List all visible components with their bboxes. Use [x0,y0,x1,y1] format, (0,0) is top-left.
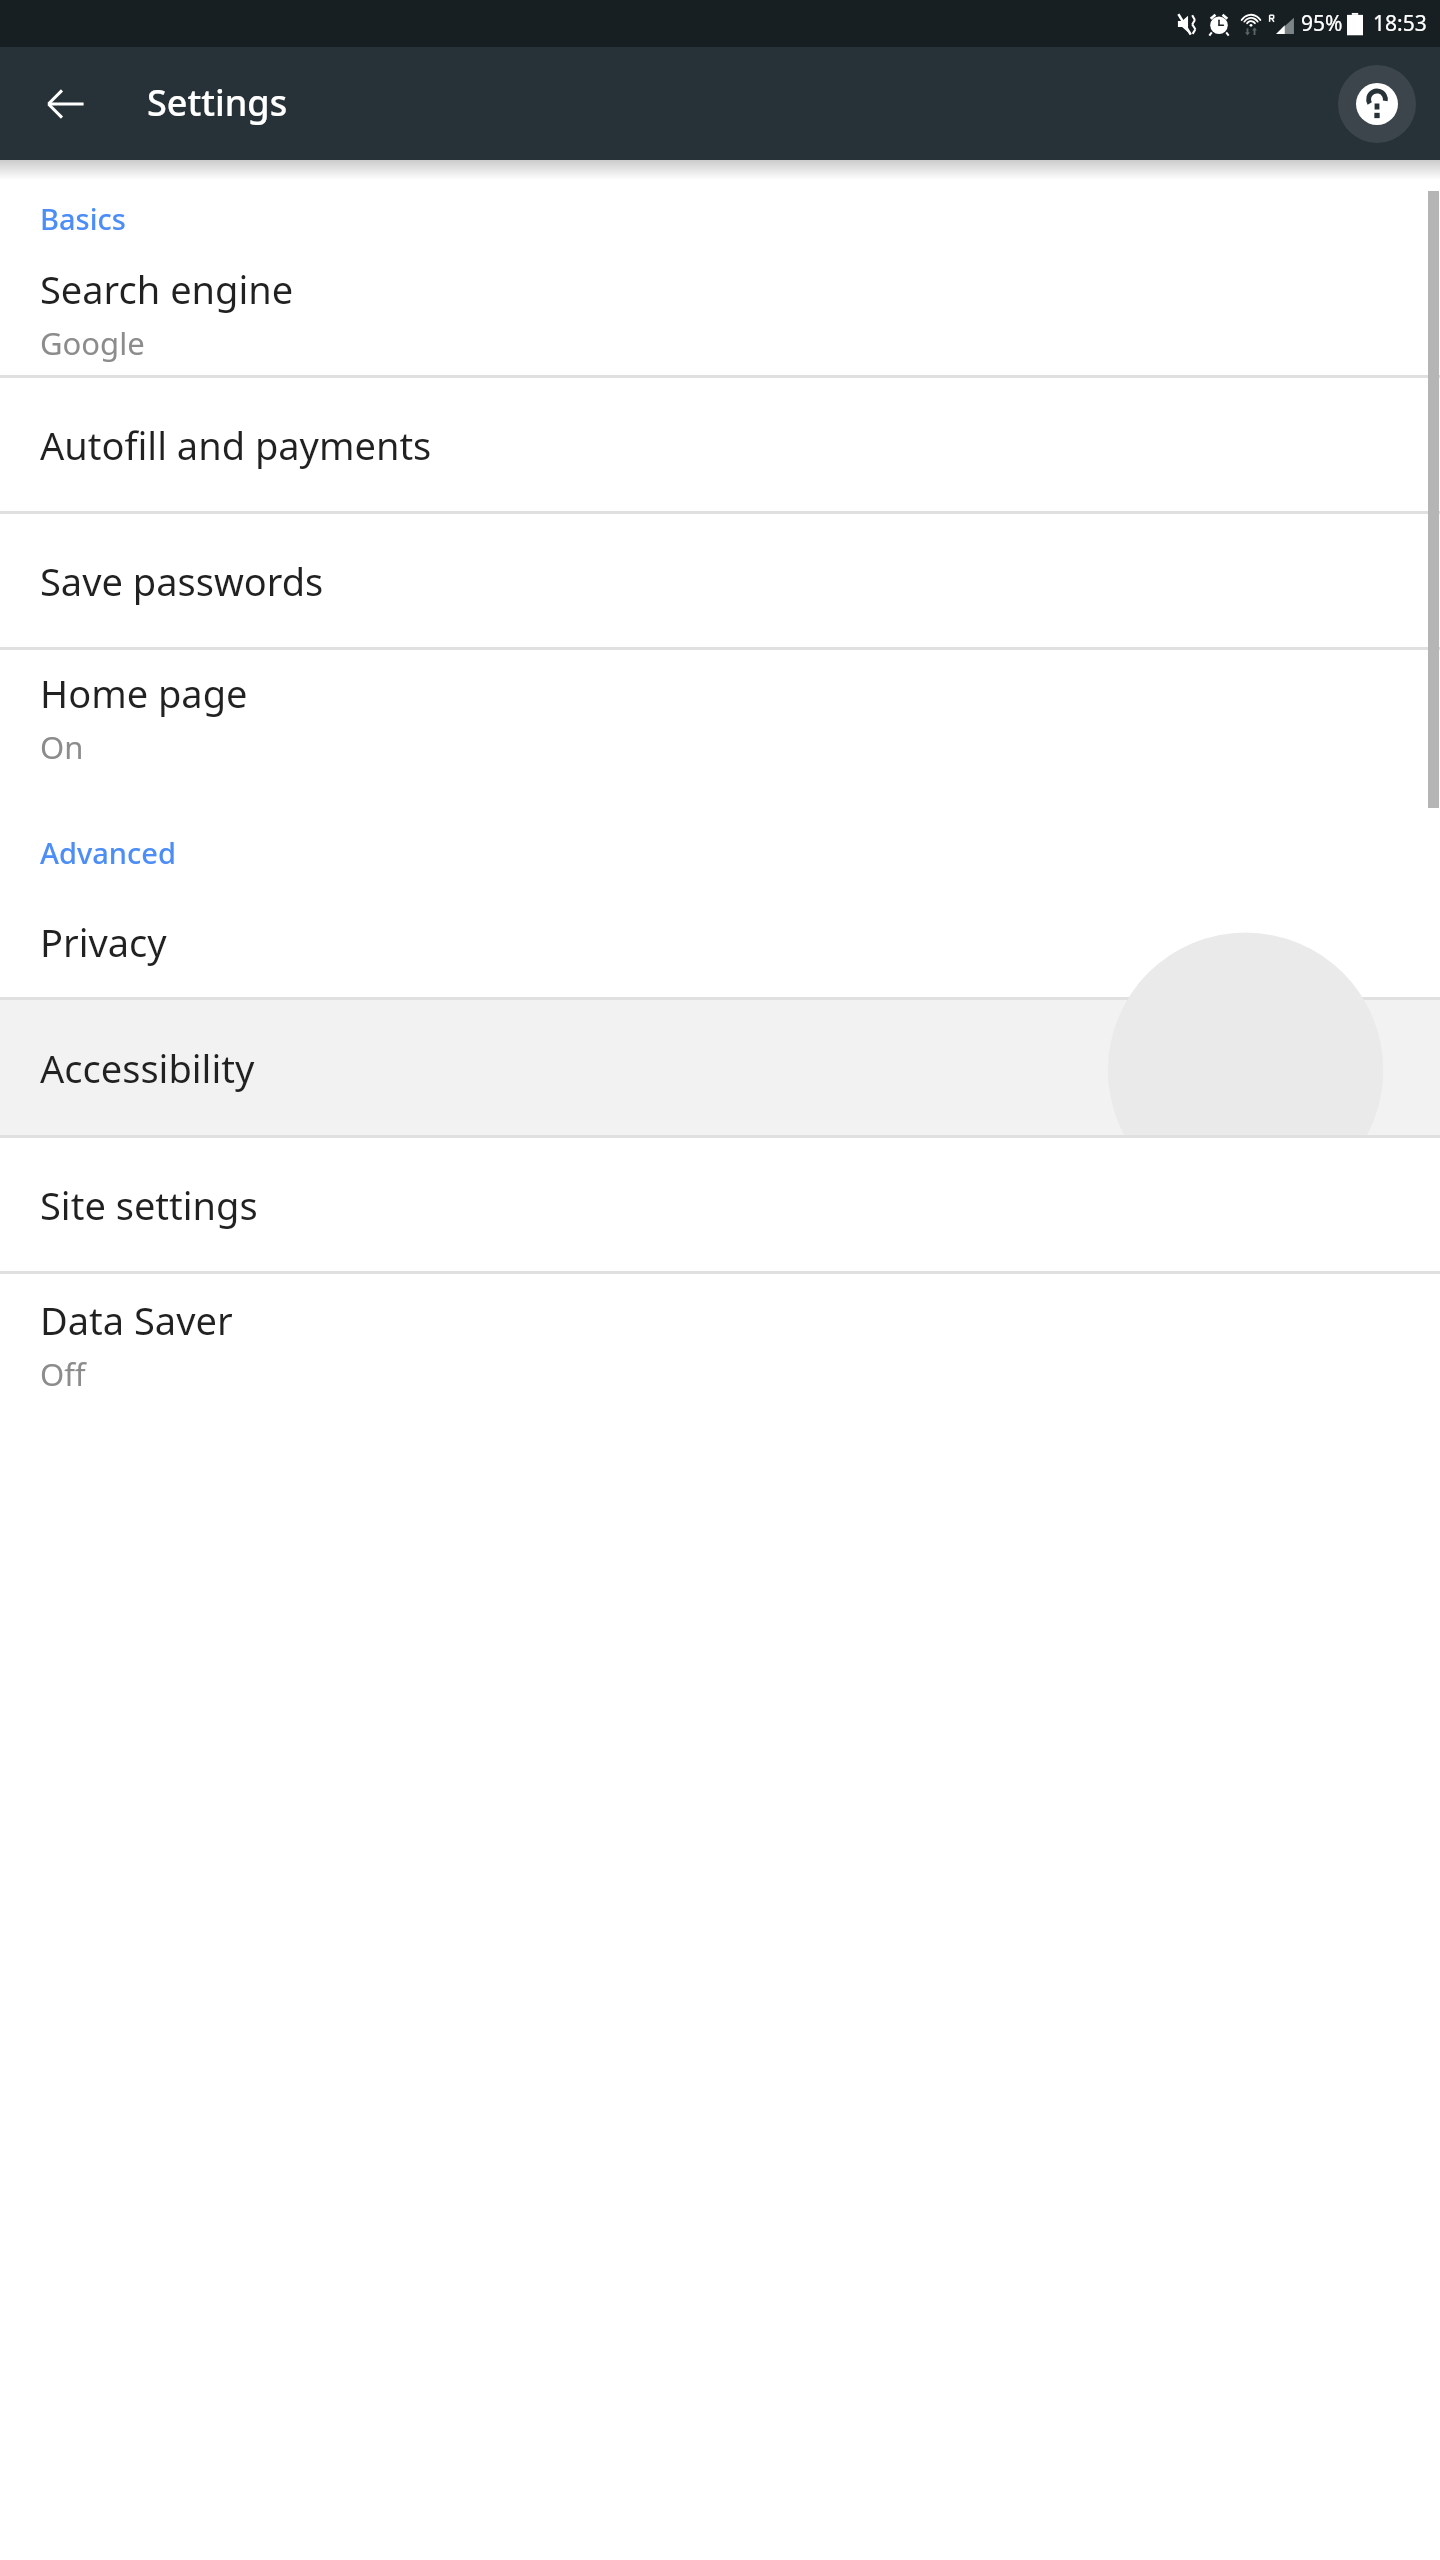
button[interactable]: Data Saver [0,1274,1440,1414]
staticText: Settings [147,78,288,127]
button[interactable]: Save passwords [0,514,1440,647]
staticText: Search engine [40,263,294,315]
button[interactable]: Site settings [0,1138,1440,1271]
button[interactable]: Search engine [0,252,1440,375]
button[interactable]: Home page [0,650,1440,784]
staticText: Off [40,1353,86,1395]
staticText: Autofill and payments [40,419,432,471]
staticText: Accessibility [40,1042,255,1094]
button[interactable]: Accessibility [0,1000,1440,1135]
staticText: 18:53 [1373,9,1427,38]
staticText: Site settings [40,1179,258,1231]
staticText: Basics [40,199,126,238]
button[interactable]: Help and feedback [1338,65,1416,143]
button[interactable]: Autofill and payments [0,378,1440,511]
staticText: Advanced [40,833,176,872]
staticText: Google [40,322,145,364]
button[interactable]: Privacy [0,886,1440,997]
staticText: Privacy [40,916,167,968]
staticText: 95% [1301,9,1343,38]
button[interactable]: Back [26,64,106,144]
staticText: Home page [40,667,248,719]
staticText: Data Saver [40,1294,233,1346]
staticText: On [40,726,84,768]
staticText: Save passwords [40,555,324,607]
